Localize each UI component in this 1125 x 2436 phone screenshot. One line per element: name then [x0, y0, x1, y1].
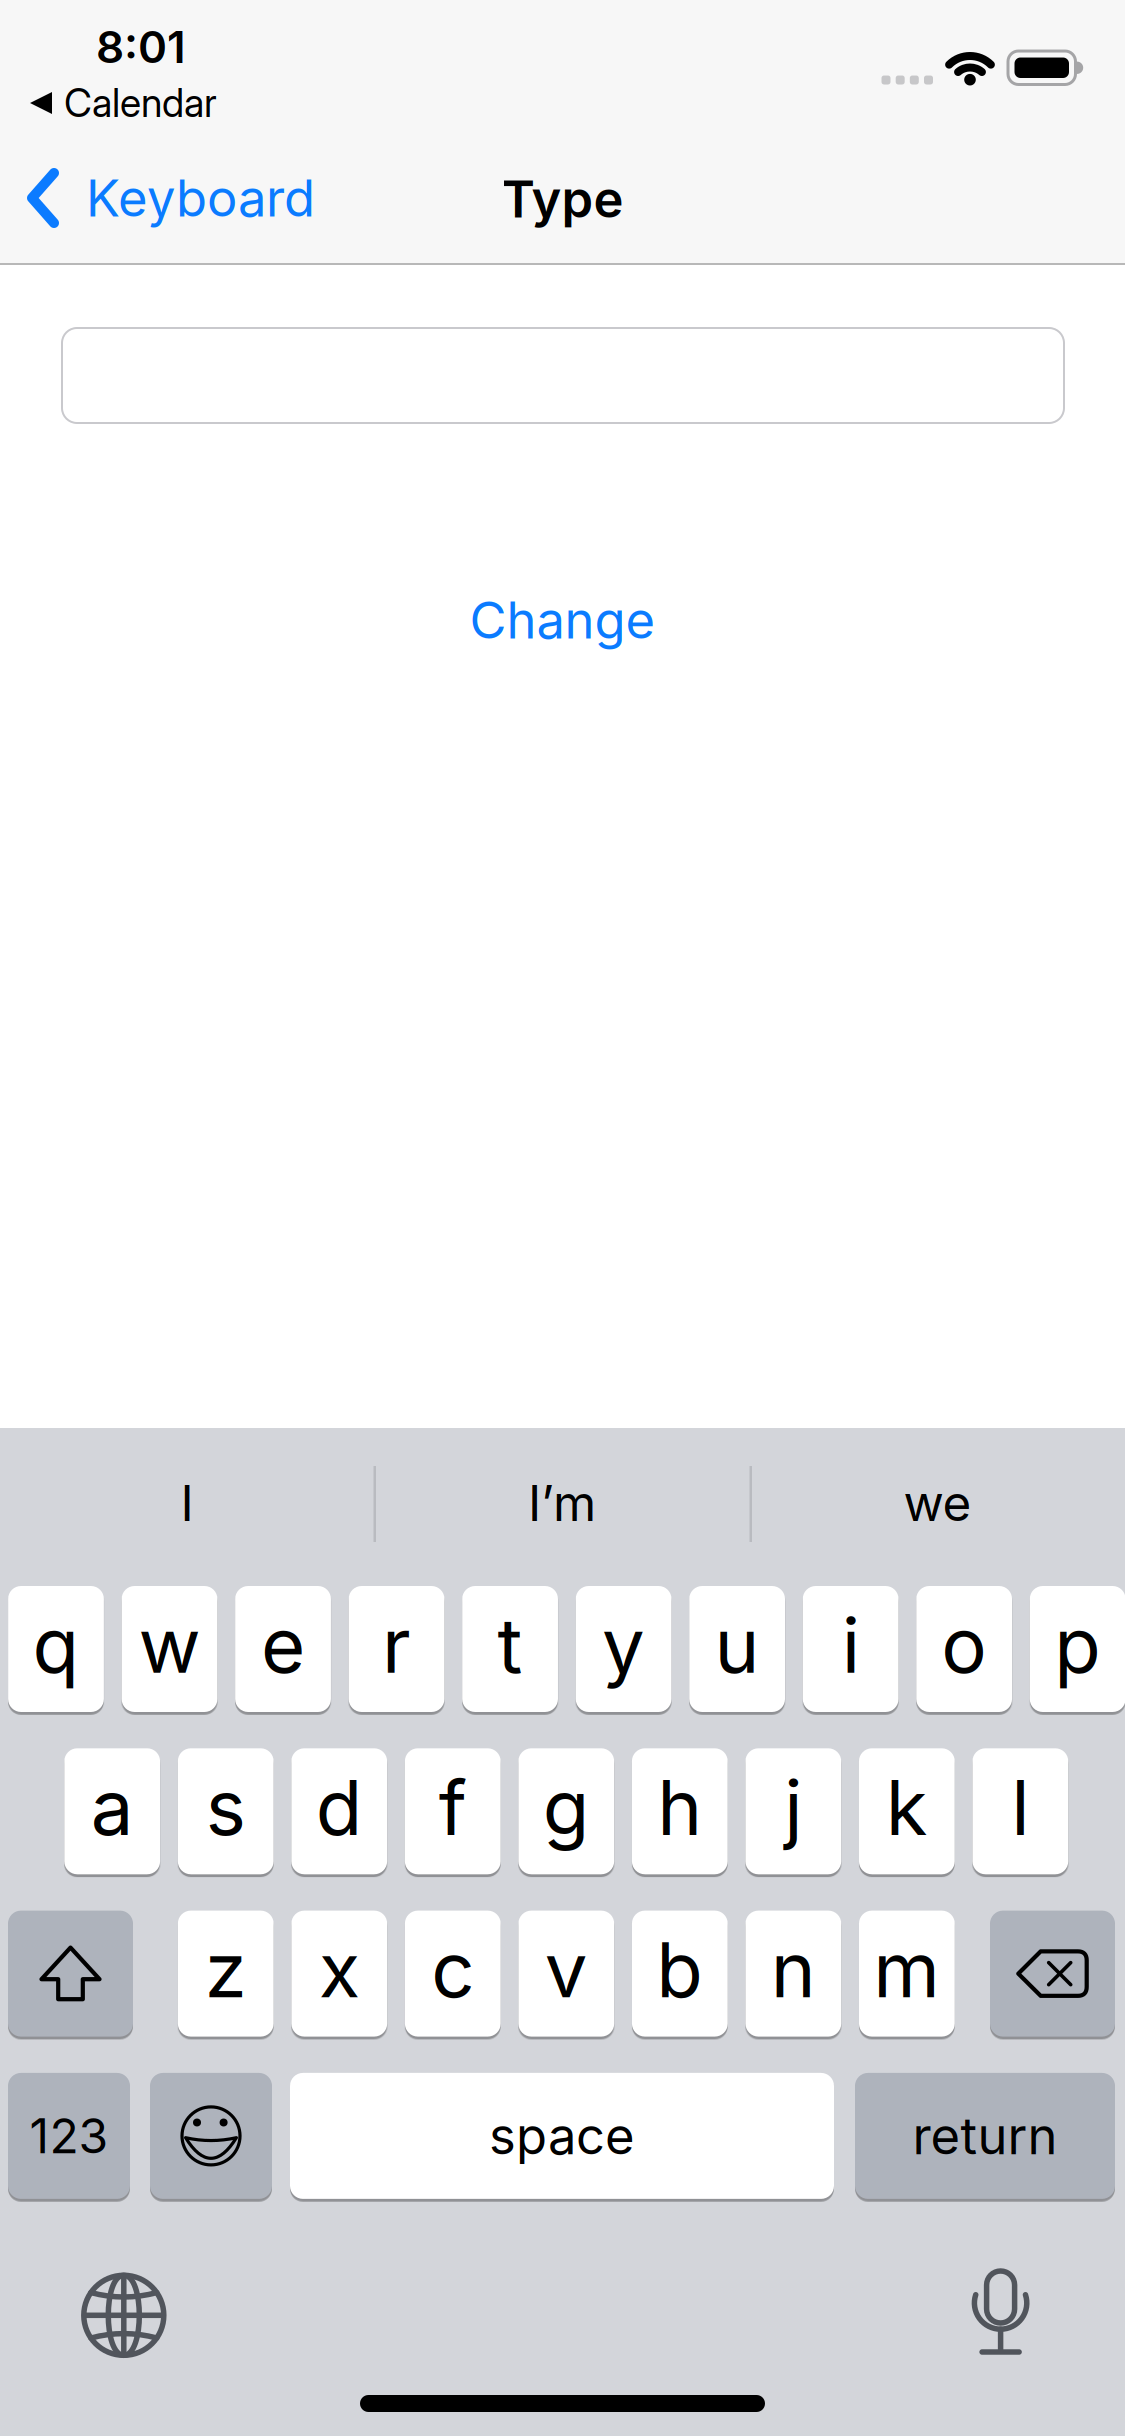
button[interactable]: a — [64, 1748, 160, 1874]
staticText: w — [138, 1600, 200, 1690]
button[interactable]: space — [290, 2073, 834, 2199]
staticText: c — [431, 1925, 474, 2014]
staticText: z — [205, 1925, 247, 2014]
staticText: v — [545, 1925, 588, 2014]
button[interactable]: h — [632, 1748, 728, 1874]
button[interactable]: d — [291, 1748, 387, 1874]
button[interactable]: g — [518, 1748, 614, 1874]
button[interactable]: Keyboard — [27, 168, 315, 228]
button[interactable]: b — [632, 1911, 728, 2037]
staticText: r — [382, 1600, 411, 1690]
staticText: we — [903, 1474, 971, 1532]
button[interactable]: p — [1030, 1586, 1125, 1712]
staticText: Change — [469, 590, 655, 650]
button[interactable]: Calendar — [28, 80, 217, 126]
button[interactable]: I’m — [375, 1448, 749, 1558]
staticText: y — [602, 1600, 645, 1690]
staticText: Keyboard — [86, 168, 315, 228]
button[interactable]: j — [745, 1748, 841, 1874]
button[interactable]: Text field — [61, 327, 1065, 424]
staticText: f — [439, 1762, 467, 1852]
button[interactable]: Emoji — [150, 2073, 272, 2199]
staticText: j — [784, 1762, 802, 1852]
staticText: m — [873, 1925, 940, 2014]
staticText: 123 — [29, 2108, 108, 2164]
staticText: t — [498, 1600, 523, 1690]
button[interactable]: o — [916, 1586, 1012, 1712]
staticText: q — [32, 1600, 79, 1690]
button[interactable]: c — [405, 1911, 501, 2037]
staticText: b — [656, 1925, 703, 2014]
button[interactable]: i — [803, 1586, 898, 1712]
button[interactable]: I — [0, 1448, 374, 1558]
button[interactable]: v — [518, 1911, 614, 2037]
button[interactable]: l — [972, 1748, 1068, 1874]
staticText: s — [206, 1762, 246, 1852]
button[interactable]: k — [859, 1748, 955, 1874]
button[interactable]: n — [745, 1911, 841, 2037]
button[interactable]: t — [462, 1586, 558, 1712]
staticText: o — [941, 1600, 987, 1690]
staticText: 8:01 — [96, 21, 186, 73]
button[interactable]: f — [405, 1748, 501, 1874]
button[interactable]: Dictation — [956, 2266, 1046, 2358]
button[interactable]: u — [689, 1586, 785, 1712]
staticText: a — [91, 1762, 134, 1852]
button[interactable]: Change — [469, 590, 655, 650]
staticText: u — [715, 1600, 760, 1690]
staticText: n — [771, 1925, 816, 2014]
staticText: l — [1011, 1762, 1029, 1852]
staticText: I — [180, 1474, 193, 1532]
button[interactable]: w — [122, 1586, 217, 1712]
button[interactable]: y — [576, 1586, 671, 1712]
button[interactable]: Delete — [990, 1911, 1115, 2037]
button[interactable]: Shift — [8, 1911, 133, 2037]
button[interactable]: m — [859, 1911, 955, 2037]
staticText: p — [1054, 1600, 1101, 1690]
button[interactable]: r — [349, 1586, 444, 1712]
staticText: I’m — [528, 1474, 596, 1532]
button[interactable]: z — [178, 1911, 274, 2037]
button[interactable]: Next keyboard — [81, 2272, 167, 2358]
button[interactable]: x — [291, 1911, 387, 2037]
staticText: d — [316, 1762, 363, 1852]
button[interactable]: s — [178, 1748, 274, 1874]
staticText: h — [657, 1762, 702, 1852]
button[interactable]: q — [8, 1586, 104, 1712]
staticText: return — [912, 2106, 1057, 2166]
staticText: x — [319, 1925, 360, 2014]
staticText: g — [543, 1762, 590, 1852]
button[interactable]: return — [855, 2073, 1115, 2199]
button[interactable]: e — [235, 1586, 331, 1712]
staticText: e — [261, 1600, 305, 1690]
button[interactable]: we — [750, 1448, 1125, 1558]
staticText: i — [842, 1600, 860, 1690]
staticText: Calendar — [64, 80, 217, 126]
staticText: k — [886, 1762, 928, 1852]
staticText: Type — [501, 169, 623, 229]
staticText: space — [489, 2106, 635, 2166]
button[interactable]: 123 — [8, 2073, 130, 2199]
